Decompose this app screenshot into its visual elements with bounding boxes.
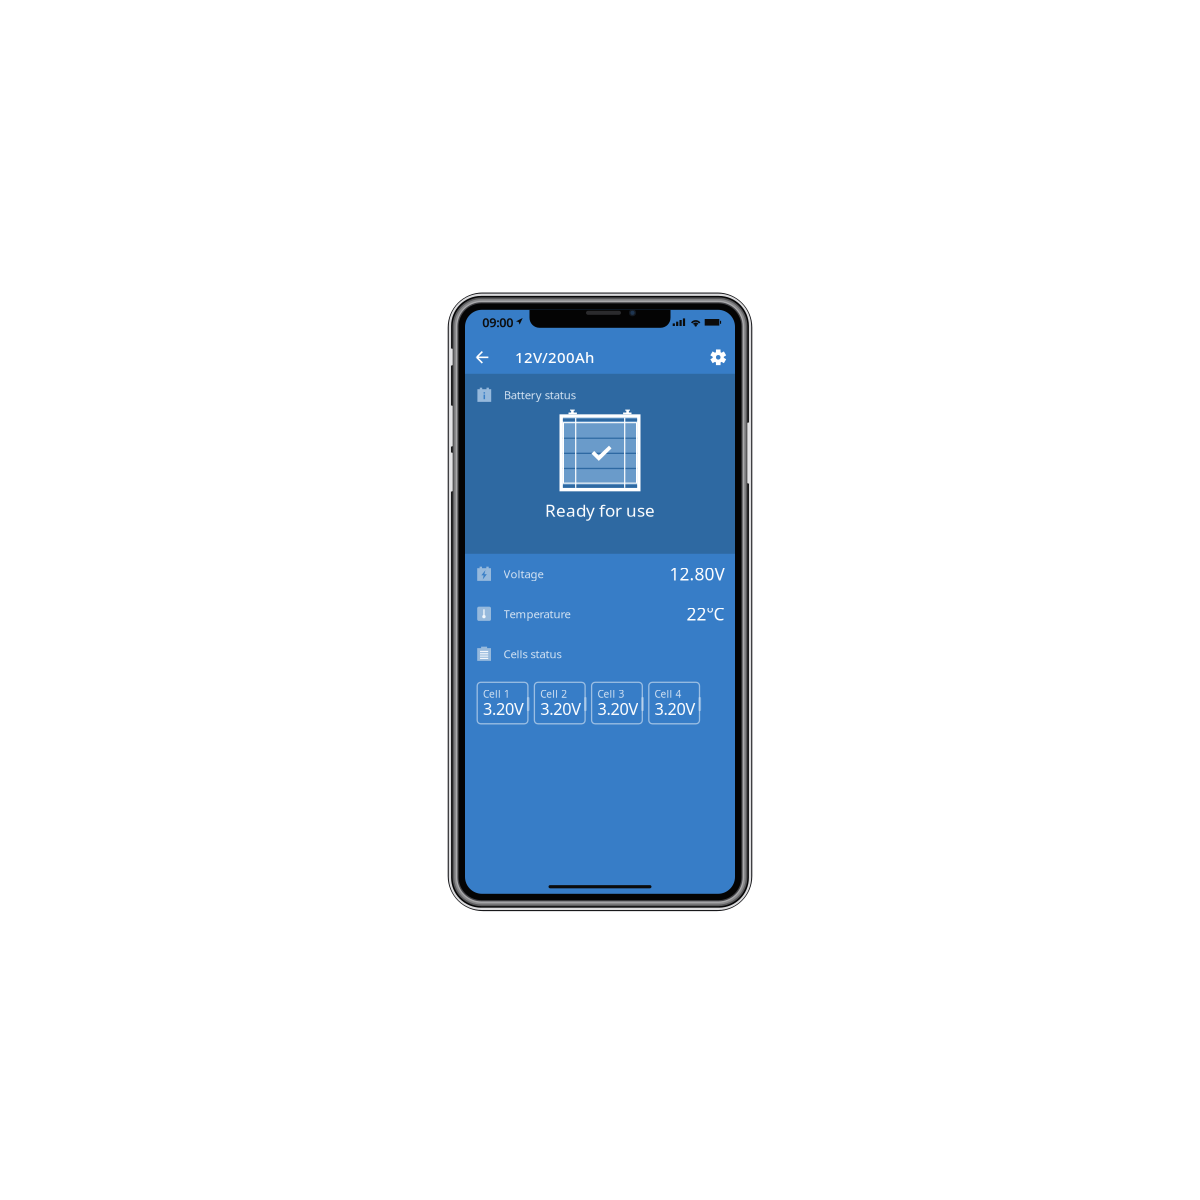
staticText: Temperature: [503, 606, 570, 621]
staticText: 3.20V: [540, 698, 581, 720]
button[interactable]: Settings: [710, 338, 726, 377]
staticText: Cell 4: [655, 687, 682, 701]
staticText: 3.20V: [655, 698, 696, 720]
staticText: 3.20V: [483, 698, 524, 720]
staticText: 22°C: [686, 602, 724, 625]
staticText: 09:00: [482, 314, 513, 331]
staticText: Cell 1: [483, 687, 510, 701]
staticText: Cell 3: [597, 687, 624, 701]
staticText: 12V/200Ah: [515, 347, 594, 367]
staticText: Ready for use: [545, 499, 655, 521]
staticText: 12.80V: [669, 562, 724, 585]
button[interactable]: Back: [465, 338, 500, 377]
staticText: Cells status: [503, 646, 561, 661]
staticText: Battery status: [504, 387, 576, 402]
staticText: Voltage: [503, 566, 543, 581]
staticText: Cell 2: [540, 687, 567, 701]
staticText: 3.20V: [597, 698, 638, 720]
